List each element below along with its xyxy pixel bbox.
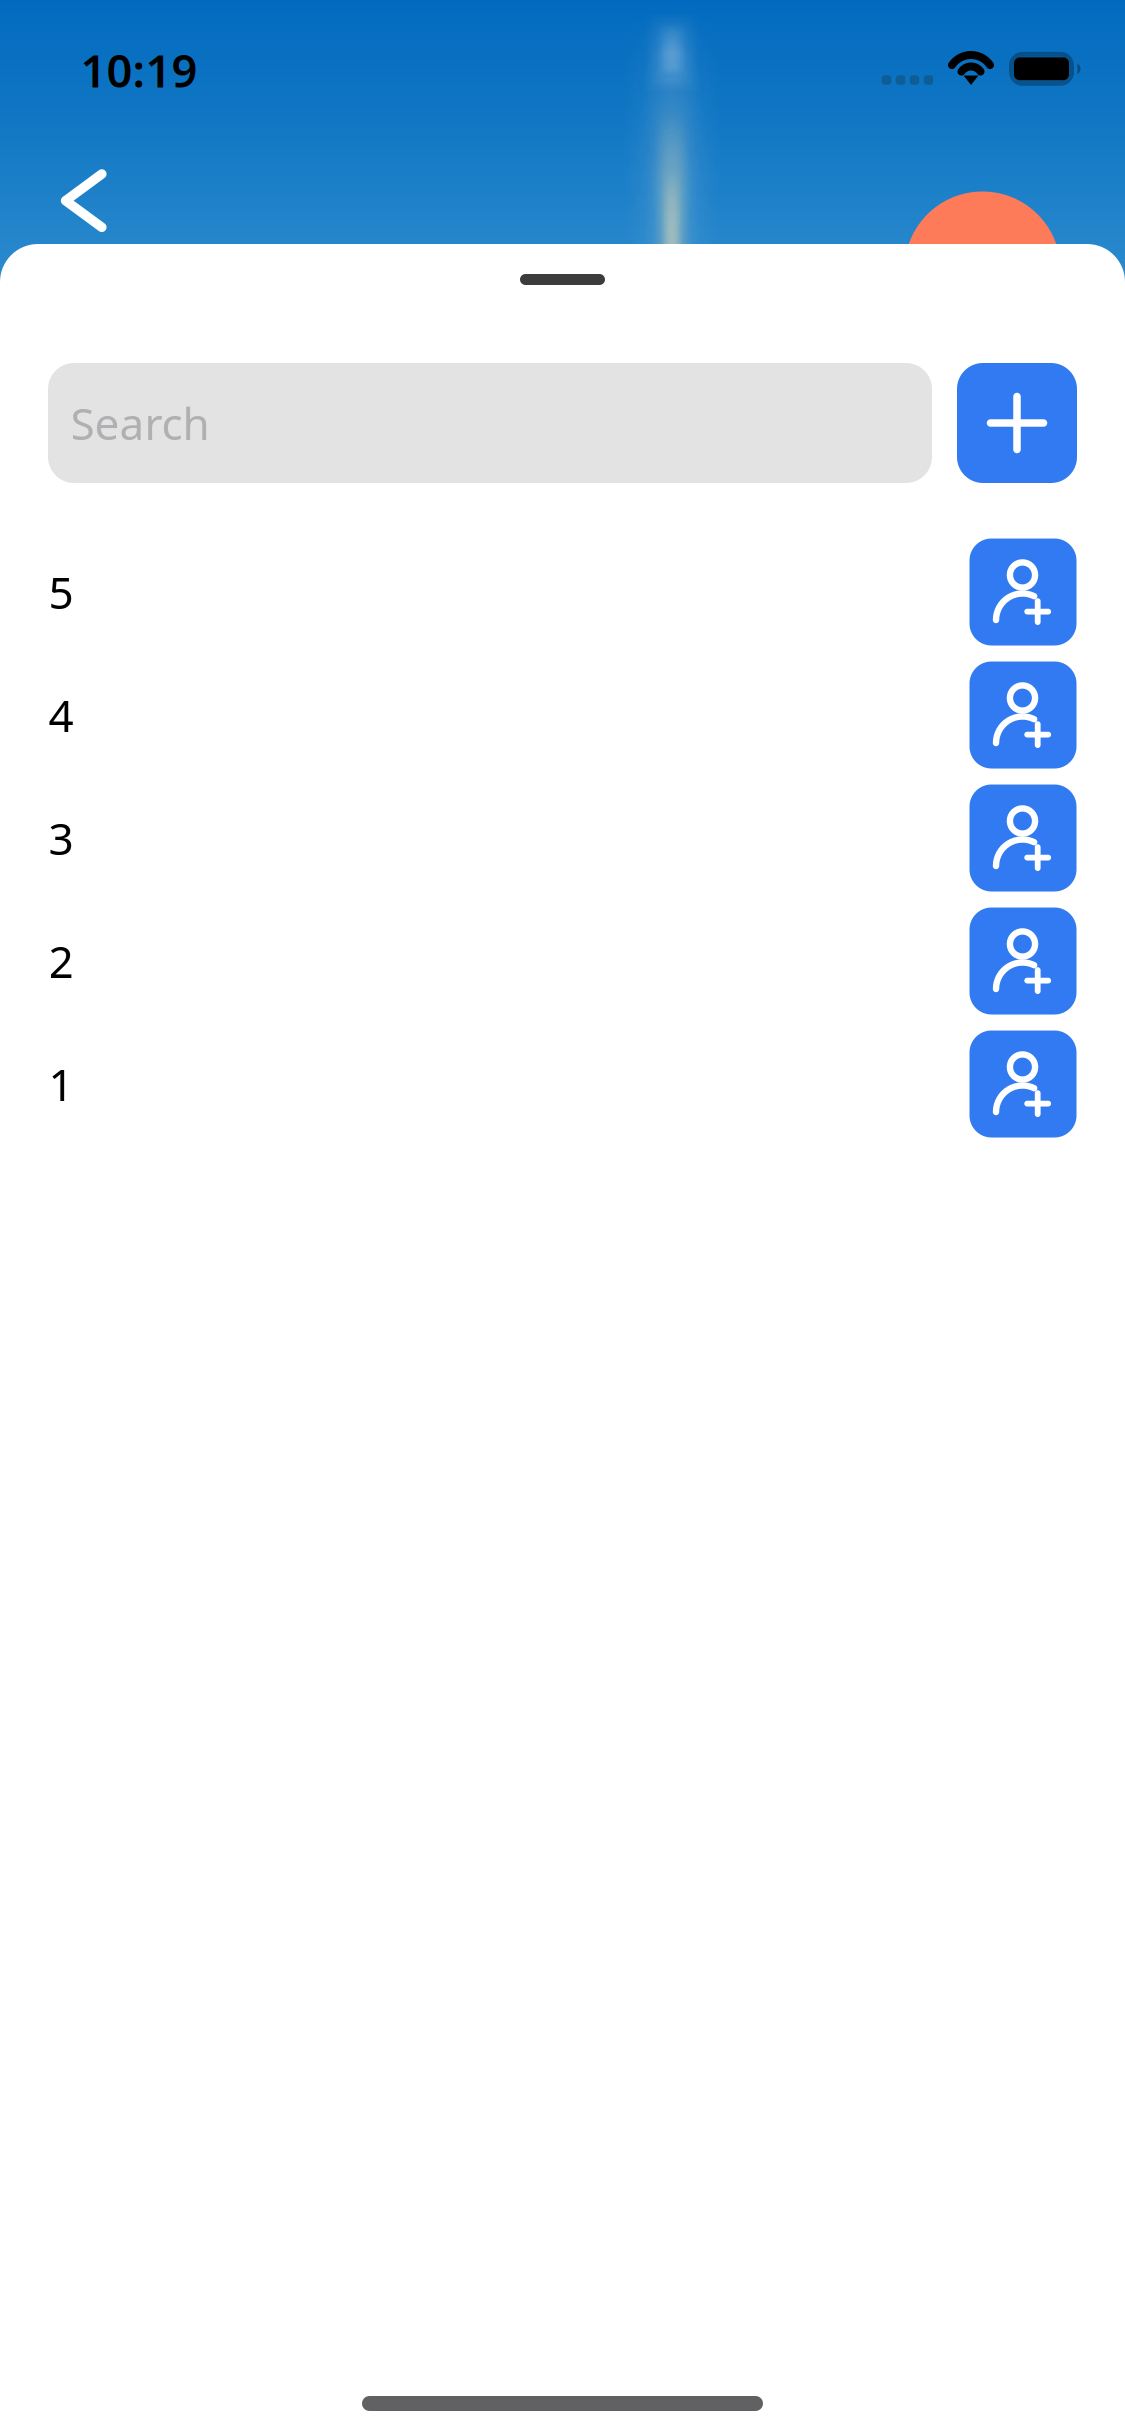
- staticText: Search: [70, 394, 209, 452]
- staticText: 10:19: [80, 40, 197, 100]
- button[interactable]: Add contact 5: [0, 530, 1125, 653]
- button[interactable]: Add contact 1: [0, 1022, 1125, 1145]
- button[interactable]: 5: [0, 530, 940, 653]
- button[interactable]: Add contact 3: [0, 776, 1125, 899]
- staticText: 2: [48, 932, 73, 990]
- button[interactable]: Search: [48, 363, 932, 483]
- button[interactable]: 4: [0, 653, 940, 776]
- staticText: 4: [48, 686, 73, 744]
- button[interactable]: 2: [0, 899, 940, 1022]
- button[interactable]: 3: [0, 776, 940, 899]
- button[interactable]: Add contact 4: [0, 653, 1125, 776]
- staticText: 3: [48, 809, 73, 867]
- button[interactable]: Back: [29, 145, 139, 255]
- staticText: 1: [48, 1055, 73, 1113]
- staticText: 5: [48, 563, 73, 621]
- button[interactable]: 1: [0, 1022, 940, 1145]
- button[interactable]: Add contact 2: [0, 899, 1125, 1022]
- button[interactable]: Add: [957, 363, 1077, 483]
